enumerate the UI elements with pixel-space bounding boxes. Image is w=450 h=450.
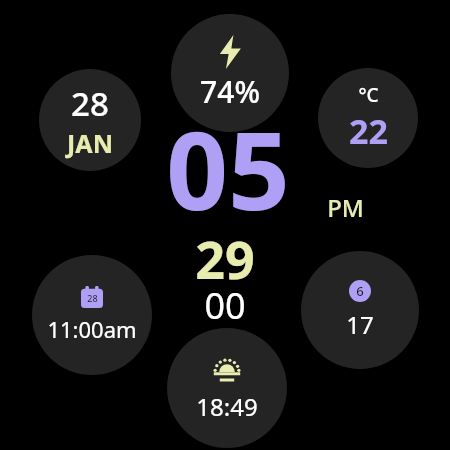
staticText: 28: [71, 81, 109, 126]
staticText: 29: [195, 223, 255, 294]
staticText: 17: [346, 308, 374, 341]
button[interactable]: Date 28 January: [39, 69, 141, 171]
staticText: 18:49: [196, 390, 258, 423]
staticText: JAN: [67, 126, 113, 160]
staticText: 28: [87, 292, 98, 304]
staticText: 00: [204, 281, 246, 330]
button[interactable]: Temperature 22 degrees Celsius: [318, 68, 418, 168]
staticText: 05: [166, 95, 290, 242]
staticText: 22: [349, 108, 388, 154]
staticText: °C: [358, 82, 379, 108]
staticText: PM: [327, 191, 364, 224]
button[interactable]: Battery 74 percent: [171, 14, 289, 132]
button[interactable]: Sunset 18:49: [167, 328, 287, 448]
staticText: 11:00am: [47, 314, 137, 344]
button[interactable]: Next event 11:00am: [32, 255, 152, 375]
staticText: 6: [356, 282, 364, 300]
staticText: 74%: [200, 71, 260, 112]
button[interactable]: Activity 17: [301, 251, 419, 369]
